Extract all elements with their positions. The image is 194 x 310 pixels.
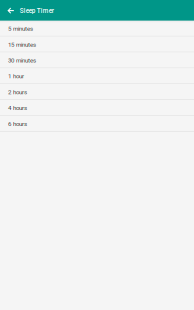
button[interactable]: 4 hours [0, 100, 194, 116]
button[interactable]: 30 minutes [0, 52, 194, 68]
button[interactable]: 5 minutes [0, 21, 194, 37]
staticText: 6 hours [8, 120, 27, 127]
staticText: 15 minutes [8, 41, 36, 48]
staticText: 4 hours [8, 104, 27, 112]
staticText: 5 minutes [8, 25, 33, 32]
button[interactable]: 15 minutes [0, 37, 194, 52]
staticText: 1 hour [8, 73, 24, 80]
button[interactable]: 2 hours [0, 84, 194, 100]
button[interactable]: 1 hour [0, 68, 194, 84]
button[interactable]: Back [0, 0, 20, 21]
button[interactable]: 6 hours [0, 116, 194, 132]
staticText: 30 minutes [8, 57, 36, 64]
staticText: Sleep Timer [20, 7, 54, 14]
staticText: 2 hours [8, 88, 27, 96]
